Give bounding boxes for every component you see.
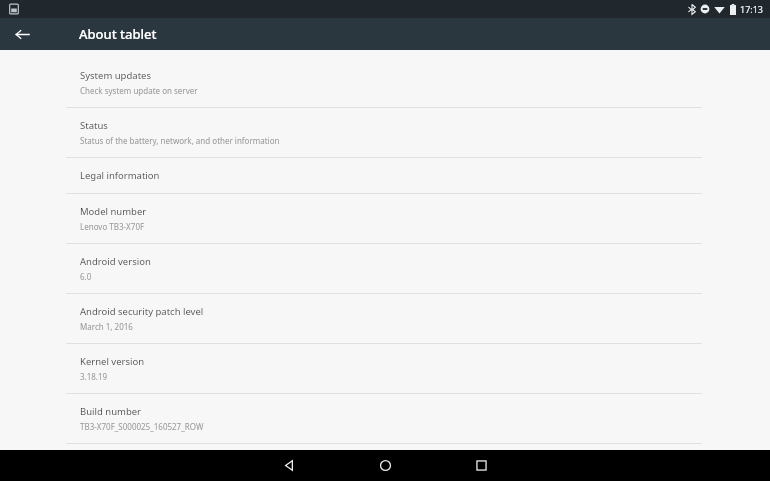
staticText: Build number	[80, 405, 142, 418]
button[interactable]: Android security patch level	[0, 294, 770, 343]
button[interactable]: Recent apps	[443, 450, 519, 481]
button[interactable]: Legal information	[0, 158, 770, 193]
staticText: Status of the battery, network, and othe…	[80, 135, 280, 146]
button[interactable]: System updates	[0, 58, 770, 107]
staticText: Model number	[80, 205, 147, 218]
button[interactable]: Back	[251, 450, 327, 481]
button[interactable]: Build number	[0, 394, 770, 443]
staticText: 6.0	[80, 271, 92, 282]
staticText: System updates	[80, 69, 151, 82]
staticText: Android version	[80, 255, 151, 268]
button[interactable]: Kernel version	[0, 344, 770, 393]
staticText: Lenovo TB3-X70F	[80, 221, 145, 232]
button[interactable]: Android version	[0, 244, 770, 293]
button[interactable]: Model number	[0, 194, 770, 243]
button[interactable]: Status	[0, 108, 770, 157]
staticText: 3.18.19	[80, 371, 108, 382]
staticText: Status	[80, 119, 108, 132]
button[interactable]: Back	[8, 20, 36, 48]
staticText: TB3-X70F_S000025_160527_ROW	[80, 421, 204, 432]
staticText: March 1, 2016	[80, 321, 133, 332]
staticText: Check system update on server	[80, 85, 198, 96]
staticText: Legal information	[80, 169, 160, 182]
staticText: Android security patch level	[80, 305, 204, 318]
staticText: Kernel version	[80, 355, 145, 368]
staticText: 17:13	[740, 3, 764, 15]
button[interactable]: Home	[347, 450, 423, 481]
staticText: About tablet	[79, 25, 157, 43]
